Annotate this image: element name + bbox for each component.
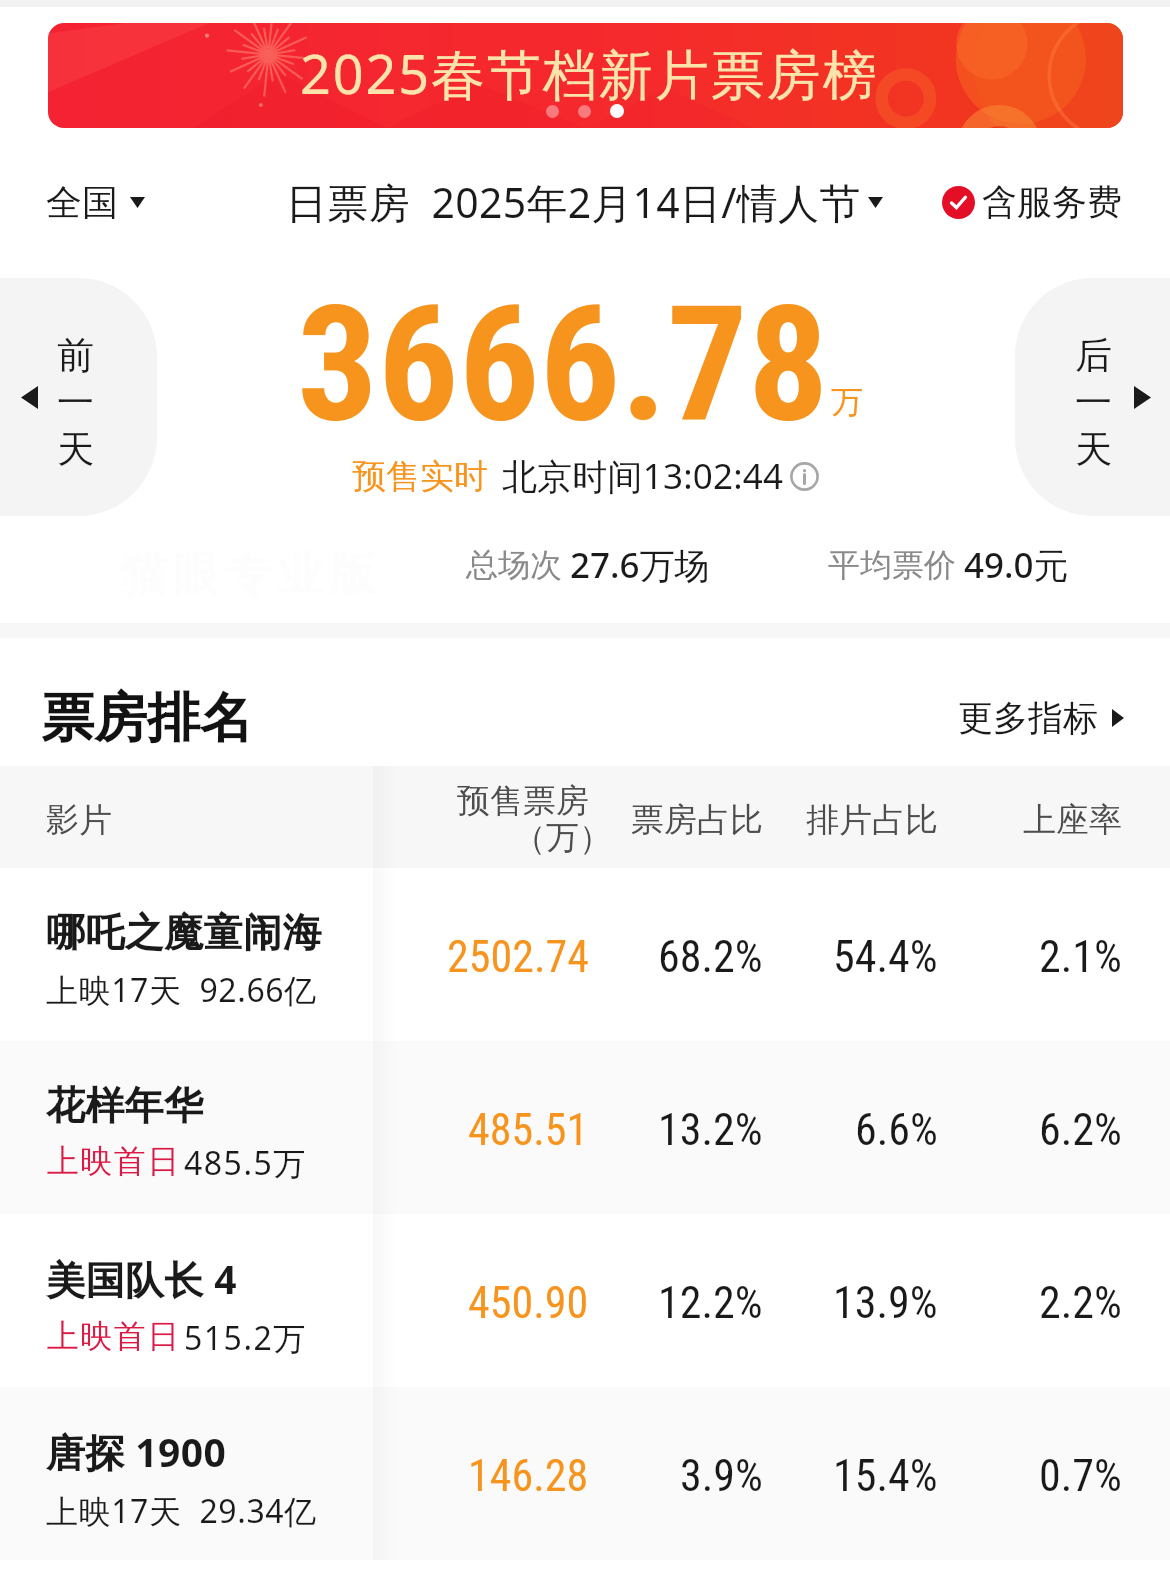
button[interactable]: 唐探 1900 (0, 1387, 1170, 1560)
staticText: 影片 (46, 799, 112, 841)
staticText: 450.90 (468, 1277, 589, 1329)
staticText: 27.6万场 (570, 541, 710, 589)
button[interactable]: 美国队长 4 (0, 1214, 1170, 1387)
staticText: 全国 (46, 180, 118, 225)
staticText: 6.6% (855, 1104, 938, 1156)
staticText: 上映17天 92.66亿 (46, 968, 317, 1012)
other: 说明 (790, 462, 819, 491)
staticText: 146.28 (468, 1450, 589, 1502)
staticText: 日票房 2025年2月14日/情人节 (286, 174, 861, 230)
staticText: 485.5万 (184, 1141, 307, 1185)
staticText: 54.4% (833, 931, 938, 983)
button[interactable]: 全国 (46, 180, 145, 225)
staticText: 一 (1075, 379, 1112, 426)
staticText: 上座率 (1023, 799, 1122, 841)
button[interactable]: 前一天 (0, 278, 157, 516)
staticText: 3.9% (680, 1450, 763, 1502)
staticText: 北京时间13:02:44 (502, 452, 784, 500)
staticText: 2502.74 (447, 931, 589, 983)
staticText: 天 (57, 426, 94, 473)
staticText: 0.7% (1039, 1450, 1122, 1502)
staticText: 平均票价 (828, 545, 956, 585)
staticText: 预售票房 (457, 780, 589, 822)
staticText: 一 (57, 379, 94, 426)
staticText: 12.2% (658, 1277, 763, 1329)
button[interactable]: 哪吒之魔童闹海 (0, 868, 1170, 1041)
staticText: 2.2% (1039, 1277, 1122, 1329)
staticText: 49.0元 (964, 541, 1069, 589)
staticText: 天 (1075, 426, 1112, 473)
button[interactable]: 更多指标 (958, 696, 1124, 740)
staticText: 13.9% (833, 1277, 938, 1329)
staticText: 15.4% (833, 1450, 938, 1502)
staticText: 2.1% (1039, 931, 1122, 983)
button[interactable]: 花样年华 (0, 1041, 1170, 1214)
staticText: 更多指标 (958, 696, 1098, 740)
staticText: 后 (1075, 332, 1112, 379)
staticText: 票房排名 (41, 685, 253, 752)
staticText: 6.2% (1039, 1104, 1122, 1156)
staticText: 花样年华 (46, 1081, 204, 1130)
staticText: 预售实时 (352, 455, 488, 498)
staticText: 3666.78 (297, 271, 829, 459)
staticText: 2025春节档新片票房榜 (300, 36, 879, 110)
button[interactable]: 含服务费 (942, 180, 1122, 224)
staticText: 唐探 1900 (46, 1425, 227, 1478)
staticText: 上映首日 (46, 1141, 180, 1181)
button[interactable]: 日票房 2025年2月14日/情人节 (286, 174, 883, 230)
button[interactable]: 2025春节档新片票房榜 (48, 23, 1123, 128)
staticText: 总场次 (466, 545, 562, 585)
staticText: 排片占比 (806, 799, 938, 841)
staticText: 13.2% (658, 1104, 763, 1156)
staticText: 上映首日 (46, 1316, 180, 1356)
staticText: 上映17天 29.34亿 (46, 1489, 317, 1533)
staticText: 美国队长 4 (46, 1252, 237, 1305)
button[interactable]: 后一天 (1015, 278, 1170, 516)
staticText: 前 (57, 332, 94, 379)
staticText: 票房占比 (631, 799, 763, 841)
staticText: 68.2% (658, 931, 763, 983)
staticText: （万） (513, 817, 612, 859)
staticText: 哪吒之魔童闹海 (46, 908, 322, 957)
staticText: 485.51 (468, 1104, 589, 1156)
staticText: 含服务费 (982, 180, 1122, 224)
staticText: 515.2万 (184, 1316, 307, 1360)
staticText: 万 (831, 382, 863, 422)
